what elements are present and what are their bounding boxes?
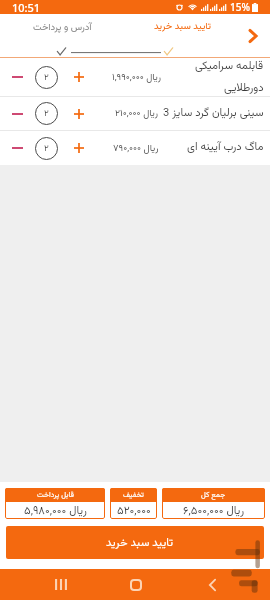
staticText: قابل پرداخت <box>37 489 74 501</box>
button[interactable]: Decrease quantity <box>0 58 270 96</box>
button[interactable]: آدرس و پرداخت <box>14 17 110 37</box>
staticText: آدرس و پرداخت <box>33 20 92 35</box>
button[interactable]: Home <box>118 569 154 600</box>
staticText: قابلمه سرامیکی <box>195 58 264 76</box>
button[interactable]: Decrease quantity <box>7 104 27 124</box>
staticText: ۲ <box>44 107 49 121</box>
button[interactable]: جمع کل <box>162 488 265 519</box>
staticText: ۶,۵۰۰,۰۰۰ ریال <box>183 502 245 519</box>
staticText: ۵۲۰,۰۰۰ <box>117 502 151 519</box>
staticText: دورطلایی <box>224 80 264 96</box>
staticText: ۲ <box>44 142 49 156</box>
staticText: تایید سبد خرید <box>154 19 211 34</box>
staticText: ۵,۹۸۰,۰۰۰ ریال <box>24 502 87 519</box>
button[interactable]: قابل پرداخت <box>5 488 105 519</box>
button[interactable]: Back <box>194 569 230 600</box>
staticText: تخفیف <box>123 489 144 501</box>
staticText: 15% <box>230 0 250 14</box>
button[interactable]: تایید سبد خرید <box>141 16 223 36</box>
button[interactable]: Decrease quantity <box>7 67 27 87</box>
staticText: ۱,۹۹۰,۰۰۰ ریال <box>112 70 161 85</box>
button[interactable]: Decrease quantity <box>0 97 270 130</box>
button[interactable]: Increase quantity <box>69 104 89 124</box>
staticText: ۷۹۰,۰۰۰ ریال <box>113 141 159 156</box>
staticText: 10:51 <box>12 0 41 14</box>
button[interactable]: Increase quantity <box>69 138 89 158</box>
button[interactable]: Increase quantity <box>69 67 89 87</box>
button[interactable]: Recent apps <box>43 569 79 600</box>
button[interactable]: Decrease quantity <box>7 138 27 158</box>
button[interactable]: Next step <box>242 22 268 46</box>
staticText: ماگ درب آیینه ای <box>187 139 264 157</box>
staticText: ۲۱۰,۰۰۰ ریال <box>115 106 158 121</box>
staticText: سینی برلیان گرد سایز 3 <box>163 105 264 123</box>
staticText: تایید سبد خرید <box>106 534 174 552</box>
staticText: جمع کل <box>201 489 226 501</box>
staticText: ۲ <box>44 71 49 85</box>
button[interactable]: Decrease quantity <box>0 131 270 165</box>
button[interactable]: تایید سبد خرید <box>6 526 264 559</box>
button[interactable]: تخفیف <box>110 488 157 519</box>
